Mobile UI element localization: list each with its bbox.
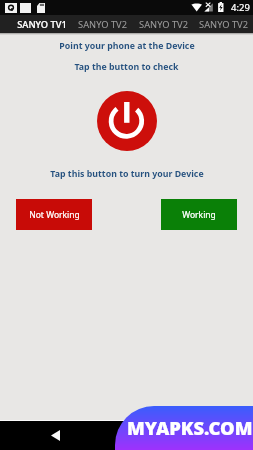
staticText: SANYO TV2 — [139, 18, 188, 31]
button[interactable]: SANYO TV1 — [11, 15, 72, 33]
staticText: Point your phone at the Device — [59, 40, 195, 52]
staticText: SANYO TV2 — [78, 18, 127, 31]
staticText: SANYO TV2 — [199, 18, 248, 31]
staticText: MYAPKS.COM — [127, 415, 253, 440]
button[interactable]: SANYO TV2 — [133, 15, 194, 33]
button[interactable]: SANYO TV2 — [72, 15, 133, 33]
staticText: 4:29 — [231, 1, 250, 14]
button[interactable]: Working — [161, 199, 237, 230]
button[interactable]: SANYO TV2 — [194, 15, 253, 33]
button[interactable]: Power — [97, 91, 157, 151]
button[interactable]: Back — [51, 420, 253, 450]
staticText: SANYO TV1 — [17, 18, 67, 31]
button[interactable]: Not Working — [16, 199, 92, 230]
staticText: Not Working — [29, 209, 80, 221]
staticText: Working — [182, 209, 216, 221]
staticText: Tap the button to check — [74, 61, 179, 73]
staticText: Tap this button to turn your Device — [50, 168, 204, 180]
